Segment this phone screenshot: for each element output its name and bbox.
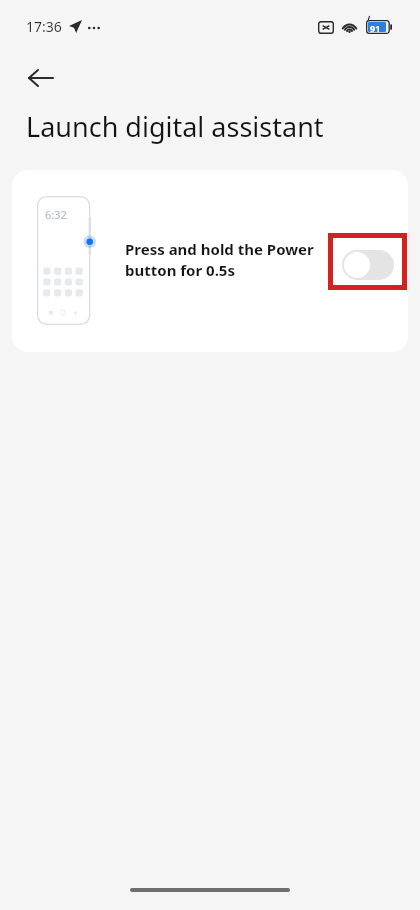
staticText: Press and hold the Power button for 0.5s [125, 239, 314, 281]
staticText: 17:36 [26, 17, 62, 36]
button[interactable]: Launch digital assistant toggle [342, 250, 394, 280]
staticText: Launch digital assistant [26, 108, 324, 145]
staticText: 6:32 [45, 207, 67, 222]
button[interactable]: Back [14, 52, 66, 104]
staticText: 91 [370, 22, 381, 34]
